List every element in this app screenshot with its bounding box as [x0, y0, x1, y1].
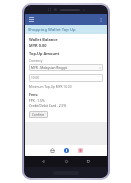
- staticText: Top-Up Amount: [29, 51, 60, 56]
- staticText: Shopping Wallet Top Up: [28, 27, 76, 33]
- staticText: Wallet Balance: [29, 37, 58, 42]
- button[interactable]: Wallet: [62, 146, 71, 155]
- staticText: Fees:: [29, 92, 39, 97]
- staticText: MYR 0.00: [29, 43, 47, 48]
- staticText: Currency: [29, 59, 43, 63]
- staticText: Minimum Top-Up MYR 10.00: [29, 85, 72, 89]
- staticText: 10.00: [31, 76, 40, 80]
- button[interactable]: More options: [96, 15, 105, 24]
- staticText: MYR - Malaysian Ringgit: [31, 66, 67, 70]
- button[interactable]: Confirm: [29, 111, 48, 118]
- button[interactable]: Home: [48, 146, 57, 155]
- button[interactable]: Menu: [27, 15, 36, 24]
- button[interactable]: Back: [39, 157, 48, 166]
- button[interactable]: Home: [62, 157, 71, 166]
- button[interactable]: Recent apps: [84, 157, 93, 166]
- button[interactable]: Profile: [76, 146, 85, 155]
- button[interactable]: 10.00: [29, 74, 103, 82]
- staticText: Confirm: [32, 113, 45, 117]
- staticText: Credit/Debit Card - 2.5%: [29, 103, 67, 107]
- staticText: FPX - 1.5%: [29, 98, 45, 102]
- button[interactable]: MYR - Malaysian Ringgit: [29, 64, 103, 71]
